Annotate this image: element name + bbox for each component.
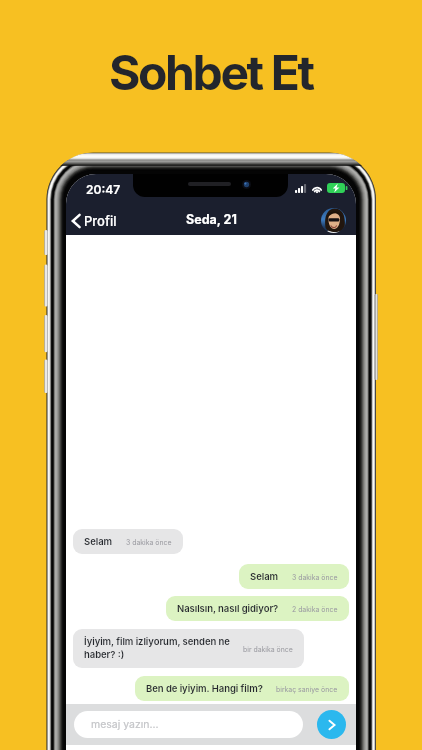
- staticText: Selam: [250, 571, 279, 582]
- staticText: 2 dakika önce: [292, 605, 338, 613]
- staticText: bir dakika önce: [243, 645, 293, 653]
- button[interactable]: Nasılsın, nasıl gidiyor?: [166, 596, 349, 621]
- staticText: İyiyim, film izliyorum, senden ne haber?…: [84, 636, 230, 661]
- button[interactable]: Send message: [317, 710, 346, 739]
- staticText: Seda, 21: [186, 212, 237, 227]
- button[interactable]: Selam: [73, 529, 183, 554]
- button[interactable]: İyiyim, film izliyorum, senden ne haber?…: [73, 629, 304, 668]
- staticText: mesaj yazın...: [91, 718, 159, 731]
- staticText: 3 dakika önce: [126, 538, 172, 546]
- button[interactable]: Selam: [239, 564, 349, 589]
- staticText: 3 dakika önce: [292, 573, 338, 581]
- staticText: Ben de iyiyim. Hangi film?: [146, 683, 263, 694]
- staticText: Sohbet Et: [109, 43, 313, 101]
- staticText: 20:47: [86, 182, 121, 197]
- staticText: Selam: [84, 536, 113, 547]
- button[interactable]: Profil: [70, 210, 119, 232]
- staticText: Nasılsın, nasıl gidiyor?: [177, 603, 279, 614]
- button[interactable]: Profile photo: [321, 208, 346, 233]
- button[interactable]: Ben de iyiyim. Hangi film?: [135, 676, 349, 701]
- staticText: Profil: [84, 213, 117, 229]
- button[interactable]: mesaj yazın...: [74, 711, 303, 738]
- staticText: birkaç saniye önce: [276, 685, 338, 693]
